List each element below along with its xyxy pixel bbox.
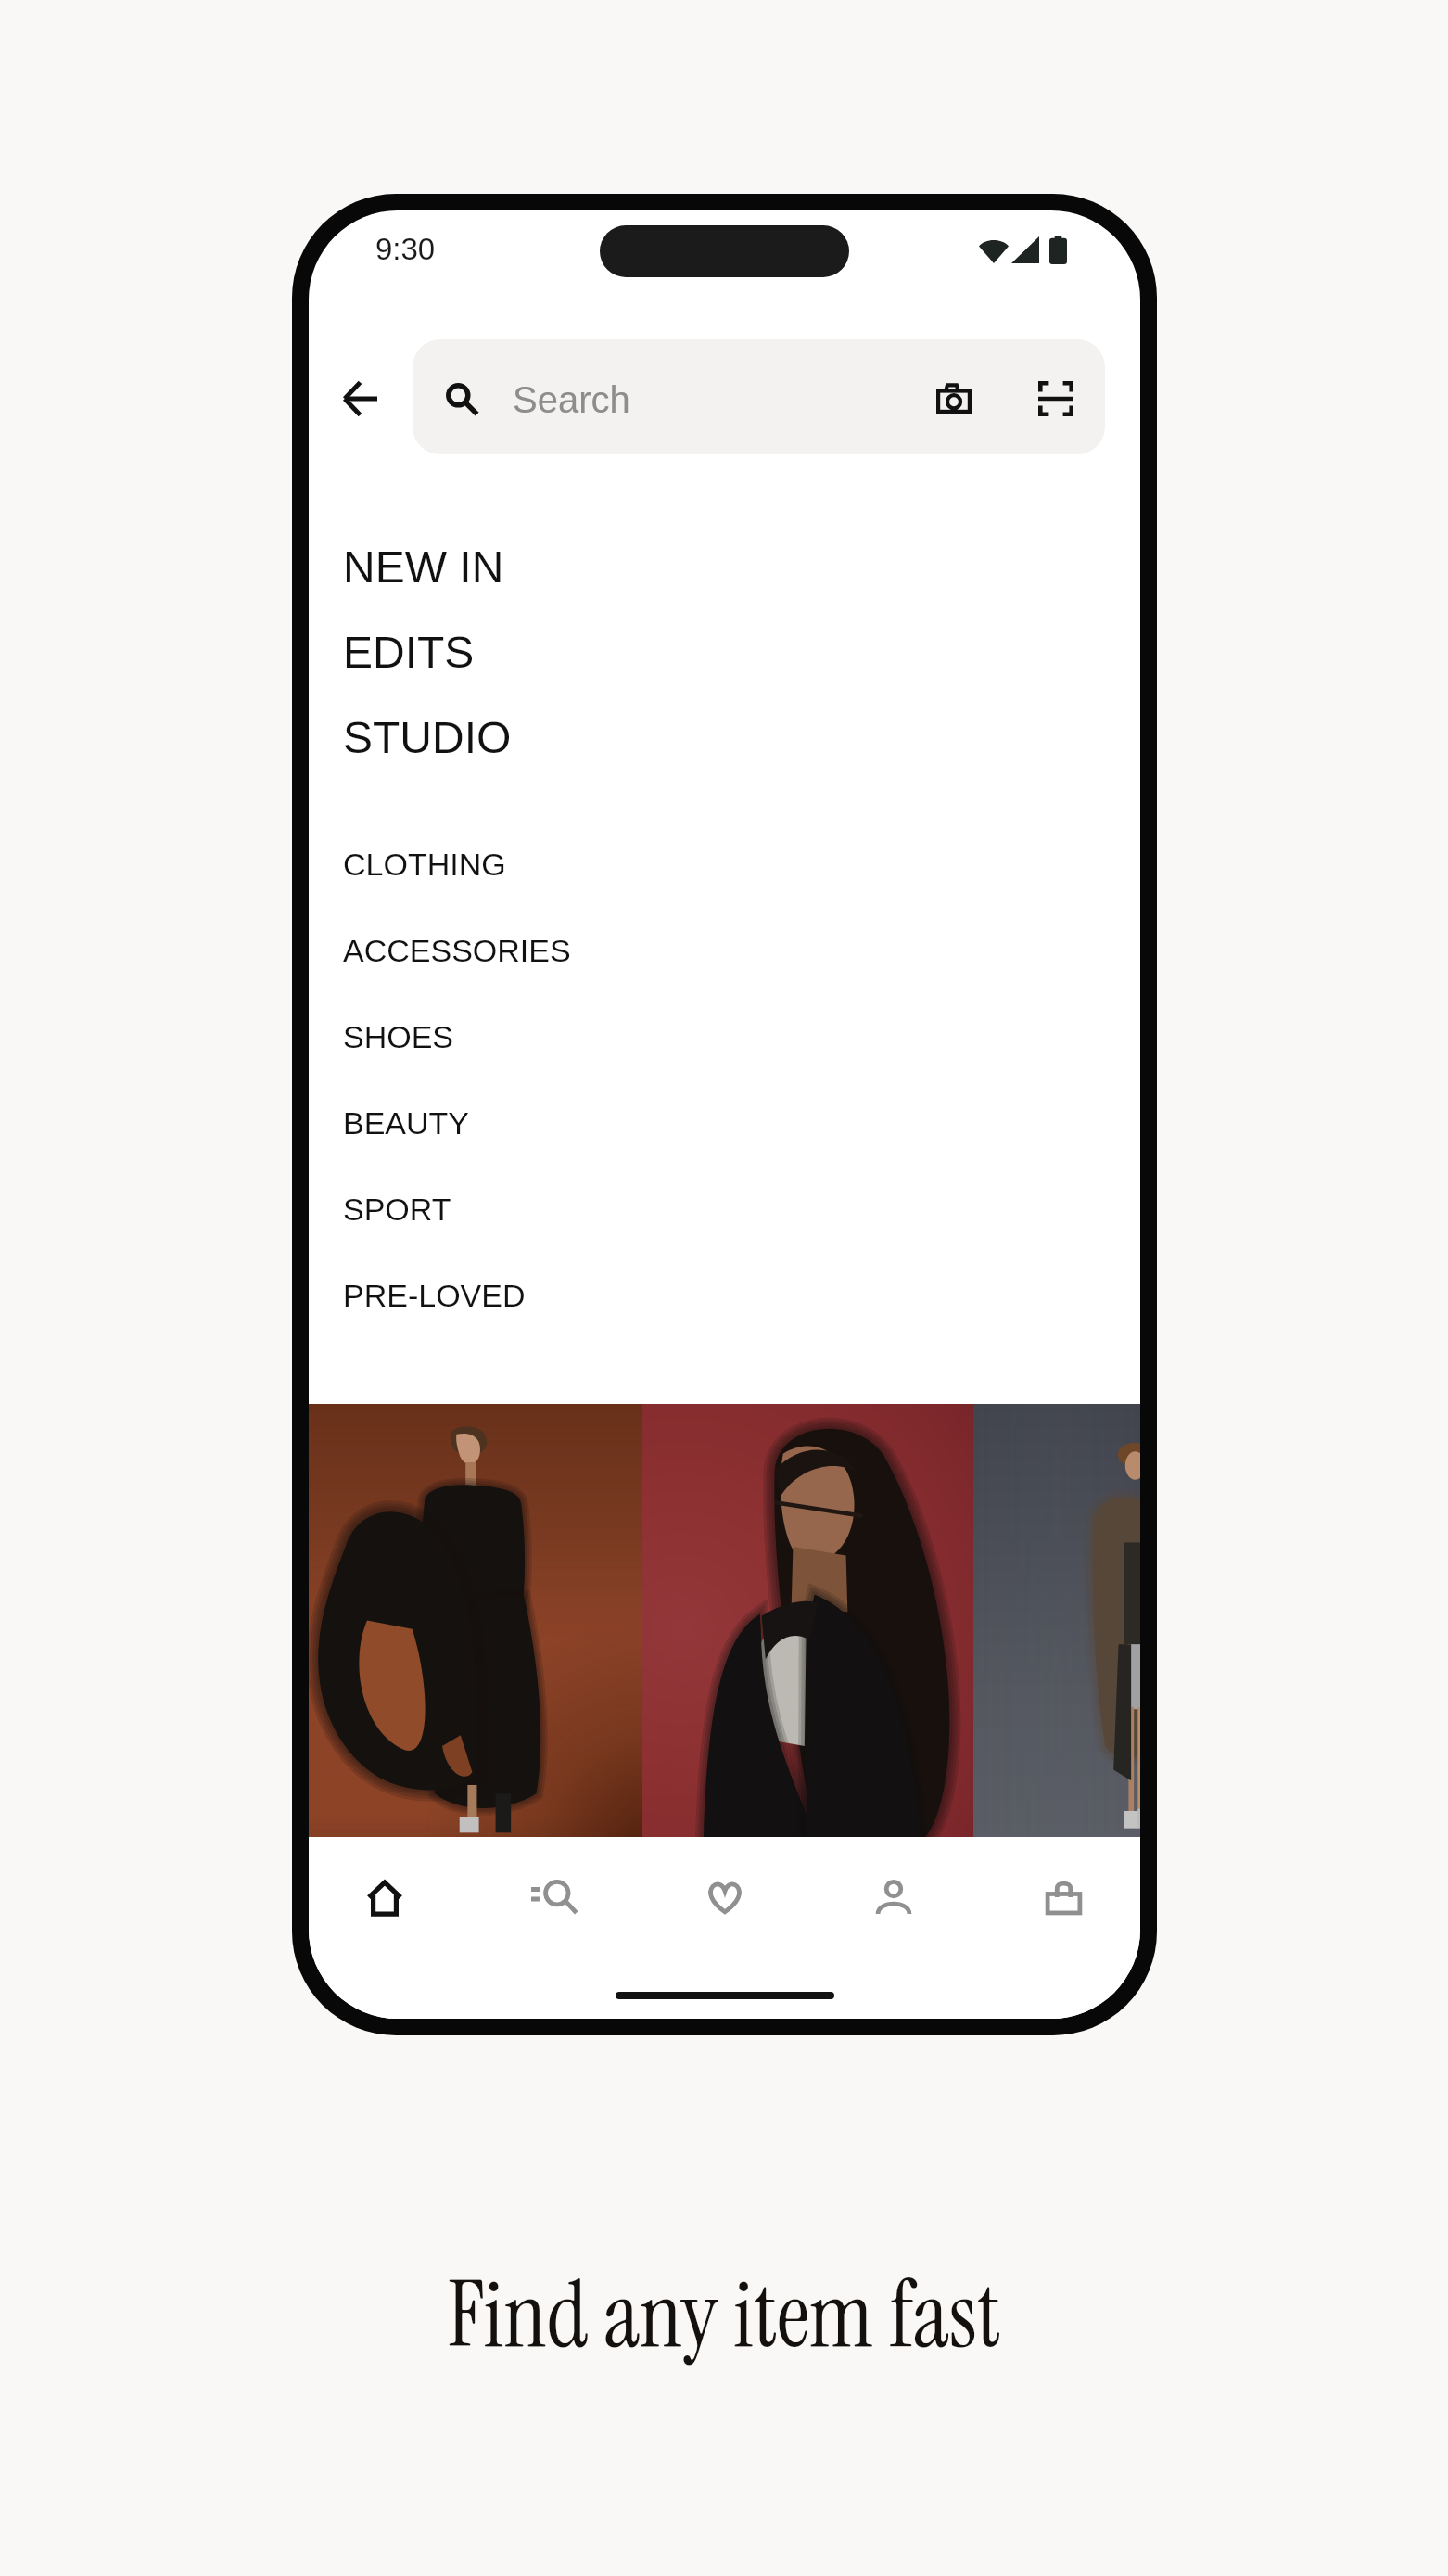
button[interactable]: Coats edit [973,1404,1140,1837]
staticText: STUDIO [343,713,512,763]
staticText: SHOES [343,1019,454,1054]
button[interactable]: Search with camera [913,358,995,440]
button[interactable]: Search field [413,339,1105,454]
button[interactable]: CLOTHING [326,821,901,907]
staticText: BEAUTY [343,1105,470,1141]
button[interactable]: Search [471,1837,636,1966]
button[interactable]: Wishlist [642,1837,807,1966]
staticText: EDITS [343,628,475,678]
button[interactable]: Back [319,358,400,440]
button[interactable]: ACCESSORIES [326,907,901,993]
button[interactable]: PRE-LOVED [326,1252,901,1338]
button[interactable]: Scan a code [1015,358,1097,440]
button[interactable]: Home [309,1837,467,1966]
button[interactable]: EDITS [326,610,901,695]
button[interactable]: BEAUTY [326,1079,901,1166]
button[interactable]: STUDIO [326,695,901,781]
button[interactable]: Menswear edit [642,1404,973,1837]
button[interactable]: Shopping bag [981,1837,1140,1966]
button[interactable]: SPORT [326,1166,901,1252]
staticText: PRE-LOVED [343,1278,526,1313]
staticText: 9:30 [375,232,436,266]
staticText: NEW IN [343,542,504,593]
button[interactable]: Autumn edit [309,1404,642,1837]
button[interactable]: SHOES [326,993,901,1079]
staticText: SPORT [343,1192,451,1227]
staticText: Search [513,379,630,421]
staticText: ACCESSORIES [343,933,571,968]
button[interactable]: NEW IN [326,525,901,610]
button[interactable]: Account [811,1837,976,1966]
staticText: CLOTHING [343,847,506,882]
staticText: Find any item fast [0,2256,1448,2374]
